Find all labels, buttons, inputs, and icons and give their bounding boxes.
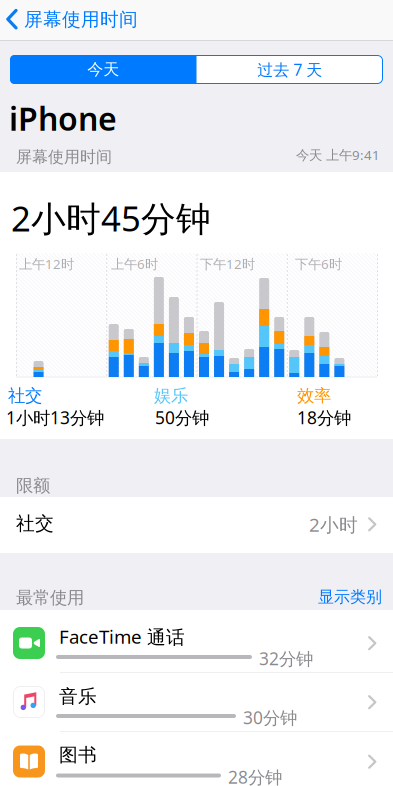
button[interactable]: 音乐 — [0, 673, 393, 732]
staticText: 显示类别 — [318, 587, 382, 607]
staticText: 28分钟 — [228, 765, 282, 786]
staticText: 2小时 — [309, 512, 358, 537]
staticText: 今天 — [87, 60, 119, 79]
button[interactable]: 图书 — [0, 732, 393, 786]
staticText: 30分钟 — [243, 706, 297, 729]
staticText: 18分钟 — [297, 406, 351, 429]
staticText: 效率 — [297, 385, 331, 406]
staticText: 1小时13分钟 — [6, 406, 104, 429]
staticText: 上午12时 — [19, 255, 74, 273]
staticText: 最常使用 — [16, 587, 84, 608]
staticText: 屏幕使用时间 — [24, 8, 138, 31]
staticText: 限额 — [16, 475, 50, 496]
staticText: 屏幕使用时间 — [16, 147, 112, 167]
staticText: 32分钟 — [259, 647, 313, 670]
button[interactable]: 今天 — [10, 55, 196, 84]
button[interactable]: 过去 7 天 — [196, 55, 383, 84]
staticText: 图书 — [59, 743, 97, 766]
button[interactable]: FaceTime 通话 — [0, 610, 393, 673]
staticText: 2小时45分钟 — [11, 195, 211, 241]
staticText: FaceTime 通话 — [59, 624, 185, 649]
button[interactable]: 屏幕使用时间 — [6, 8, 138, 31]
button[interactable]: 社交 — [0, 497, 393, 553]
staticText: iPhone — [9, 97, 117, 139]
staticText: 下午6时 — [295, 255, 342, 273]
staticText: 50分钟 — [155, 406, 209, 429]
staticText: 社交 — [8, 385, 42, 406]
staticText: 音乐 — [59, 685, 97, 708]
staticText: 娱乐 — [154, 385, 188, 406]
staticText: 今天 上午9:41 — [296, 146, 380, 164]
staticText: 过去 7 天 — [257, 59, 322, 80]
staticText: 上午6时 — [111, 255, 158, 273]
staticText: 社交 — [16, 512, 54, 535]
button[interactable]: 显示类别 — [318, 587, 382, 607]
staticText: 下午12时 — [200, 255, 255, 273]
